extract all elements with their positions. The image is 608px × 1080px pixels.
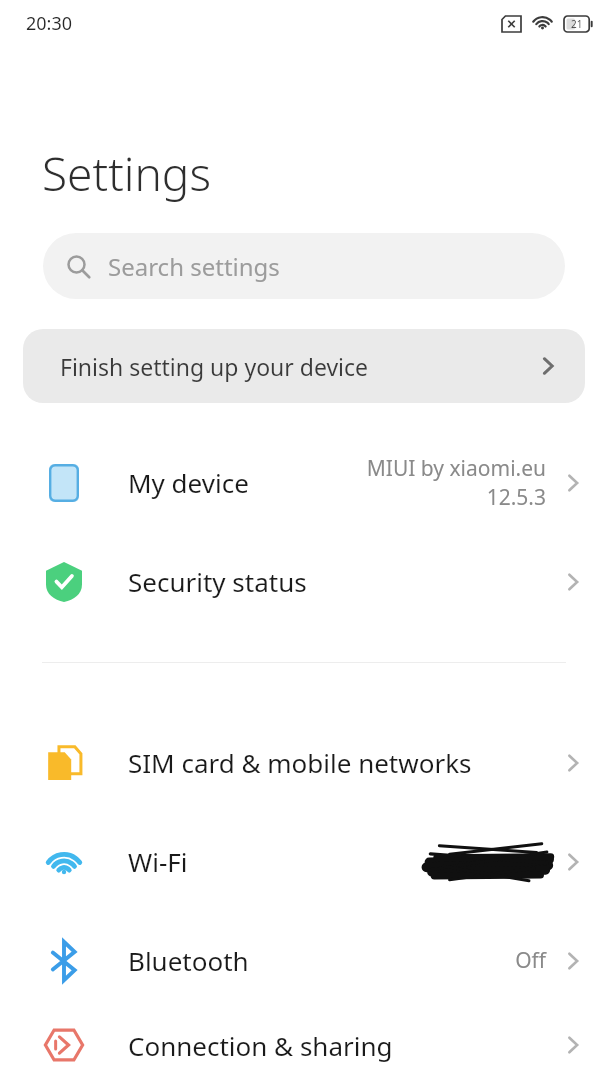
staticText: Settings bbox=[42, 142, 211, 205]
button[interactable]: Security status bbox=[0, 532, 608, 631]
staticText: Security status bbox=[128, 564, 307, 599]
button[interactable]: Search settings bbox=[43, 233, 565, 299]
button[interactable]: SIM card & mobile networks bbox=[0, 713, 608, 812]
staticText: 12.5.3 bbox=[486, 483, 546, 512]
button[interactable]: Bluetooth bbox=[0, 911, 608, 1010]
staticText: Bluetooth bbox=[128, 943, 249, 978]
staticText: MIUI by xiaomi.eu bbox=[366, 454, 546, 483]
staticText: SIM card & mobile networks bbox=[128, 745, 472, 780]
button[interactable]: Finish setting up your device bbox=[23, 329, 585, 403]
staticText: Off bbox=[515, 946, 546, 975]
staticText: Wi-Fi bbox=[128, 844, 188, 879]
staticText: Finish setting up your device bbox=[60, 351, 369, 382]
staticText: Connection & sharing bbox=[128, 1028, 393, 1063]
staticText: 21 bbox=[571, 17, 583, 31]
button[interactable]: Connection & sharing bbox=[0, 1010, 608, 1080]
staticText: 20:30 bbox=[26, 11, 73, 36]
button[interactable]: Wi-Fi bbox=[0, 812, 608, 911]
staticText: Search settings bbox=[108, 250, 280, 283]
button[interactable]: My device bbox=[0, 433, 608, 532]
staticText: My device bbox=[128, 465, 249, 500]
